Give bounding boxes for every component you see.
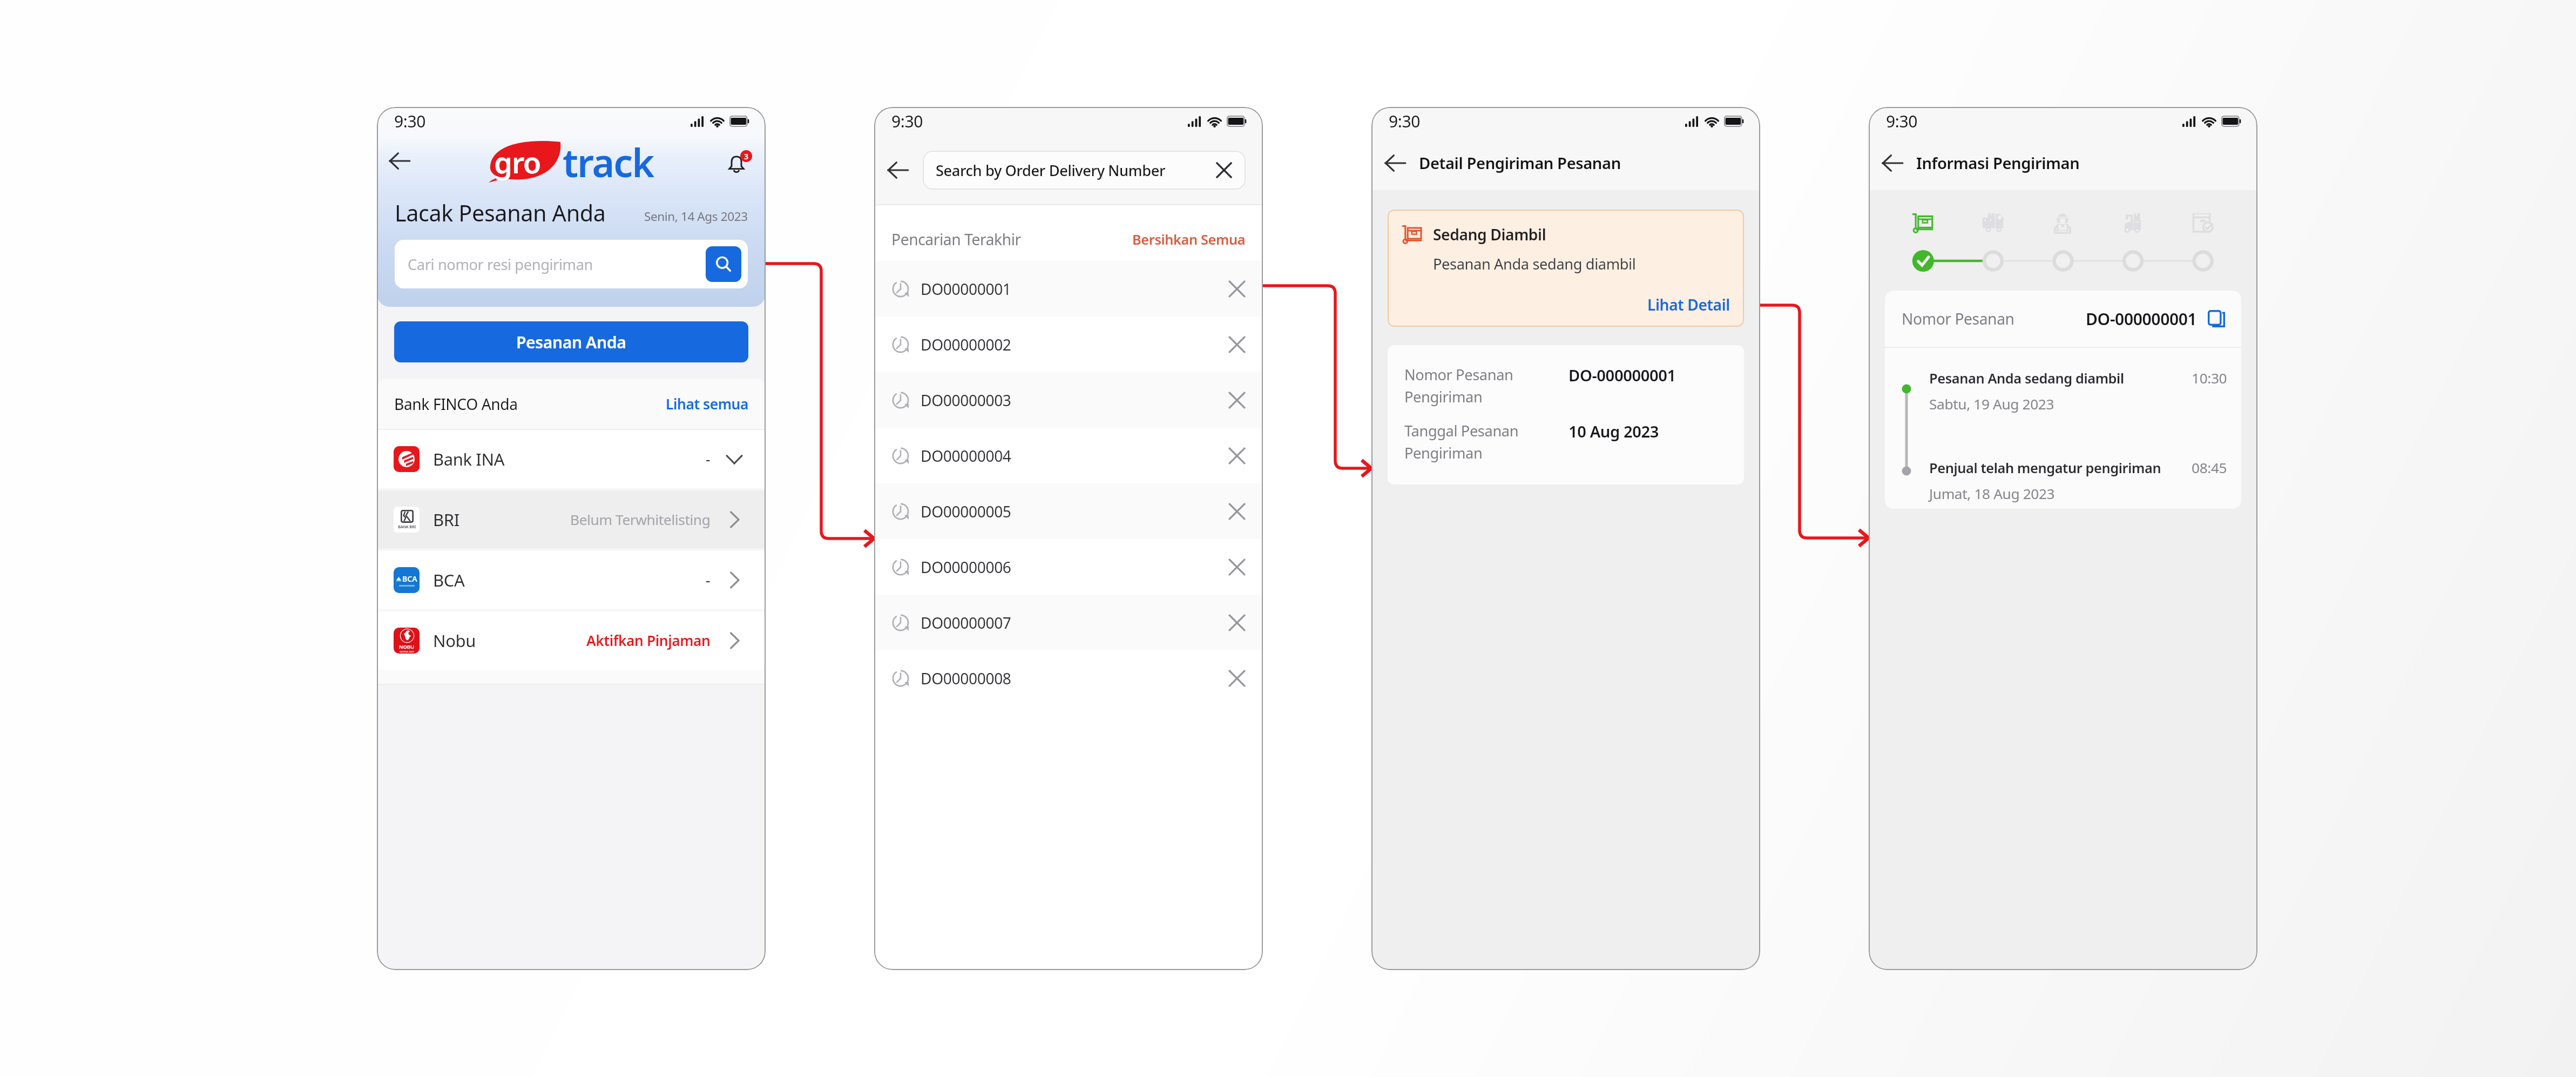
staticText: Pesanan Anda sedang diambil <box>1433 254 1636 274</box>
staticText: DO00000006 <box>921 557 1011 577</box>
staticText: BANK BRI <box>398 524 416 529</box>
button[interactable]: Search <box>706 246 741 282</box>
button[interactable]: Pesanan Anda <box>394 321 748 362</box>
staticText: - <box>706 449 711 469</box>
button[interactable]: NOBU <box>377 611 766 670</box>
staticText: 08:45 <box>2192 458 2227 477</box>
button[interactable]: Bank INA <box>377 430 766 488</box>
button[interactable]: Remove DO00000003 <box>1225 388 1249 412</box>
button[interactable]: DO00000003 <box>874 372 1263 428</box>
staticText: DO00000001 <box>921 279 1011 299</box>
button[interactable]: Clear search <box>1213 159 1235 181</box>
staticText: DO00000004 <box>921 446 1011 466</box>
button[interactable]: Remove DO00000006 <box>1225 555 1249 579</box>
staticText: DO-000000001 <box>2086 308 2197 330</box>
staticText: 9:30 <box>1389 110 1421 132</box>
staticText: Pesanan Anda sedang diambil <box>1929 369 2124 388</box>
staticText: DO00000002 <box>921 334 1011 355</box>
staticText: NOBU <box>399 643 415 650</box>
button[interactable]: Remove DO00000007 <box>1225 611 1249 635</box>
staticText: Detail Pengiriman Pesanan <box>1419 152 1621 174</box>
button[interactable]: Lihat semua <box>666 394 748 414</box>
button[interactable]: DO00000002 <box>874 317 1263 372</box>
staticText: - <box>706 570 711 590</box>
staticText: Pesanan Anda <box>516 331 626 353</box>
button[interactable]: Remove DO00000008 <box>1225 667 1249 690</box>
staticText: gro <box>494 142 540 182</box>
button[interactable]: DO00000005 <box>874 483 1263 539</box>
button[interactable]: Bersihkan Semua <box>1132 230 1246 249</box>
staticText: Bank INA <box>433 448 505 470</box>
button[interactable]: Remove DO00000002 <box>1225 333 1249 356</box>
staticText: Tanggal Pesanan Pengiriman <box>1404 421 1551 463</box>
staticText: 3 <box>744 151 749 161</box>
staticText: Nomor Pesanan <box>1902 308 2014 329</box>
button[interactable]: BCA <box>377 551 766 609</box>
staticText: Cari nomor resi pengiriman <box>408 254 706 274</box>
staticText: DO00000005 <box>921 501 1011 522</box>
staticText: Bersihkan Semua <box>1132 230 1246 249</box>
button[interactable]: Back <box>1876 147 1909 179</box>
staticText: Belum Terwhitelisting <box>570 510 711 529</box>
button[interactable]: Remove DO00000004 <box>1225 444 1249 468</box>
staticText: DO-000000001 <box>1568 365 1676 386</box>
button[interactable]: Cari nomor resi pengiriman <box>395 240 748 288</box>
staticText: BCA <box>433 569 465 591</box>
button[interactable]: DO00000001 <box>874 261 1263 317</box>
button[interactable]: Bank FINCO Anda <box>377 379 766 429</box>
staticText: BRI <box>433 508 459 531</box>
button[interactable]: DO00000006 <box>874 539 1263 595</box>
staticText: Senin, 14 Ags 2023 <box>644 208 748 225</box>
staticText: Bank FINCO Anda <box>394 394 518 414</box>
staticText: 9:30 <box>891 110 923 132</box>
button[interactable]: Back <box>1379 147 1411 179</box>
staticText: track <box>563 136 654 184</box>
staticText: Jumat, 18 Aug 2023 <box>1929 484 2055 503</box>
staticText: 9:30 <box>1886 110 1918 132</box>
button[interactable]: DO00000007 <box>874 595 1263 650</box>
button[interactable]: Remove DO00000005 <box>1225 500 1249 523</box>
staticText: DO00000007 <box>921 612 1011 633</box>
button[interactable]: DO00000004 <box>874 428 1263 483</box>
staticText: Nobu <box>433 629 476 652</box>
staticText: DO00000008 <box>921 668 1011 689</box>
staticText: 10:30 <box>2192 368 2227 388</box>
button[interactable]: Remove DO00000001 <box>1225 277 1249 301</box>
staticText: Sabtu, 19 Aug 2023 <box>1929 394 2054 414</box>
button[interactable]: Notifications <box>726 146 755 176</box>
button[interactable]: Search by Order Delivery Number <box>923 151 1246 190</box>
staticText: BCA <box>402 574 417 584</box>
button[interactable]: DO00000008 <box>874 650 1263 706</box>
staticText: Search by Order Delivery Number <box>936 160 1213 180</box>
button[interactable]: BANK BRI <box>377 490 766 549</box>
button[interactable]: Back <box>882 154 914 186</box>
staticText: Informasi Pengiriman <box>1916 152 2080 174</box>
staticText: NATIONAL BANK <box>400 650 414 652</box>
button[interactable]: Back <box>383 145 416 177</box>
staticText: Nomor Pesanan Pengiriman <box>1404 365 1551 407</box>
staticText: Lihat Detail <box>1647 294 1730 315</box>
staticText: Aktifkan Pinjaman <box>586 631 711 650</box>
staticText: Lihat semua <box>666 394 748 414</box>
button[interactable]: Copy order number <box>2206 308 2227 329</box>
staticText: Sedang Diambil <box>1433 224 1546 245</box>
staticText: 10 Aug 2023 <box>1568 421 1659 442</box>
staticText: Lacak Pesanan Anda <box>395 198 606 228</box>
staticText: 9:30 <box>394 110 426 132</box>
staticText: DO00000003 <box>921 390 1011 410</box>
staticText: Penjual telah mengatur pengiriman <box>1929 459 2161 477</box>
button[interactable]: Lihat Detail <box>1402 294 1730 315</box>
staticText: Pencarian Terakhir <box>891 229 1021 250</box>
